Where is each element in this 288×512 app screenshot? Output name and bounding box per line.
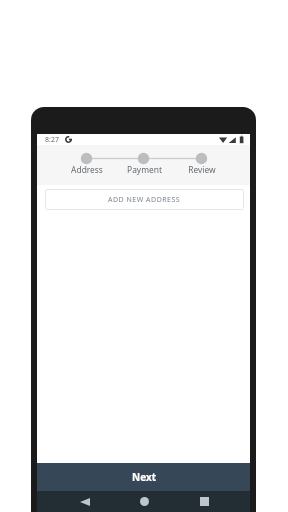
button[interactable]: Next [37, 463, 250, 491]
staticText: Payment [127, 164, 162, 175]
staticText: 8:27 [45, 135, 59, 145]
staticText: Address [71, 164, 103, 175]
staticText: Next [132, 470, 157, 484]
button[interactable]: Recent apps [190, 491, 218, 512]
button[interactable]: Back [71, 491, 99, 512]
button[interactable]: ADD NEW ADDRESS [45, 189, 244, 210]
staticText: Review [188, 164, 216, 175]
staticText: ADD NEW ADDRESS [108, 195, 181, 205]
button[interactable]: Home [130, 491, 158, 512]
